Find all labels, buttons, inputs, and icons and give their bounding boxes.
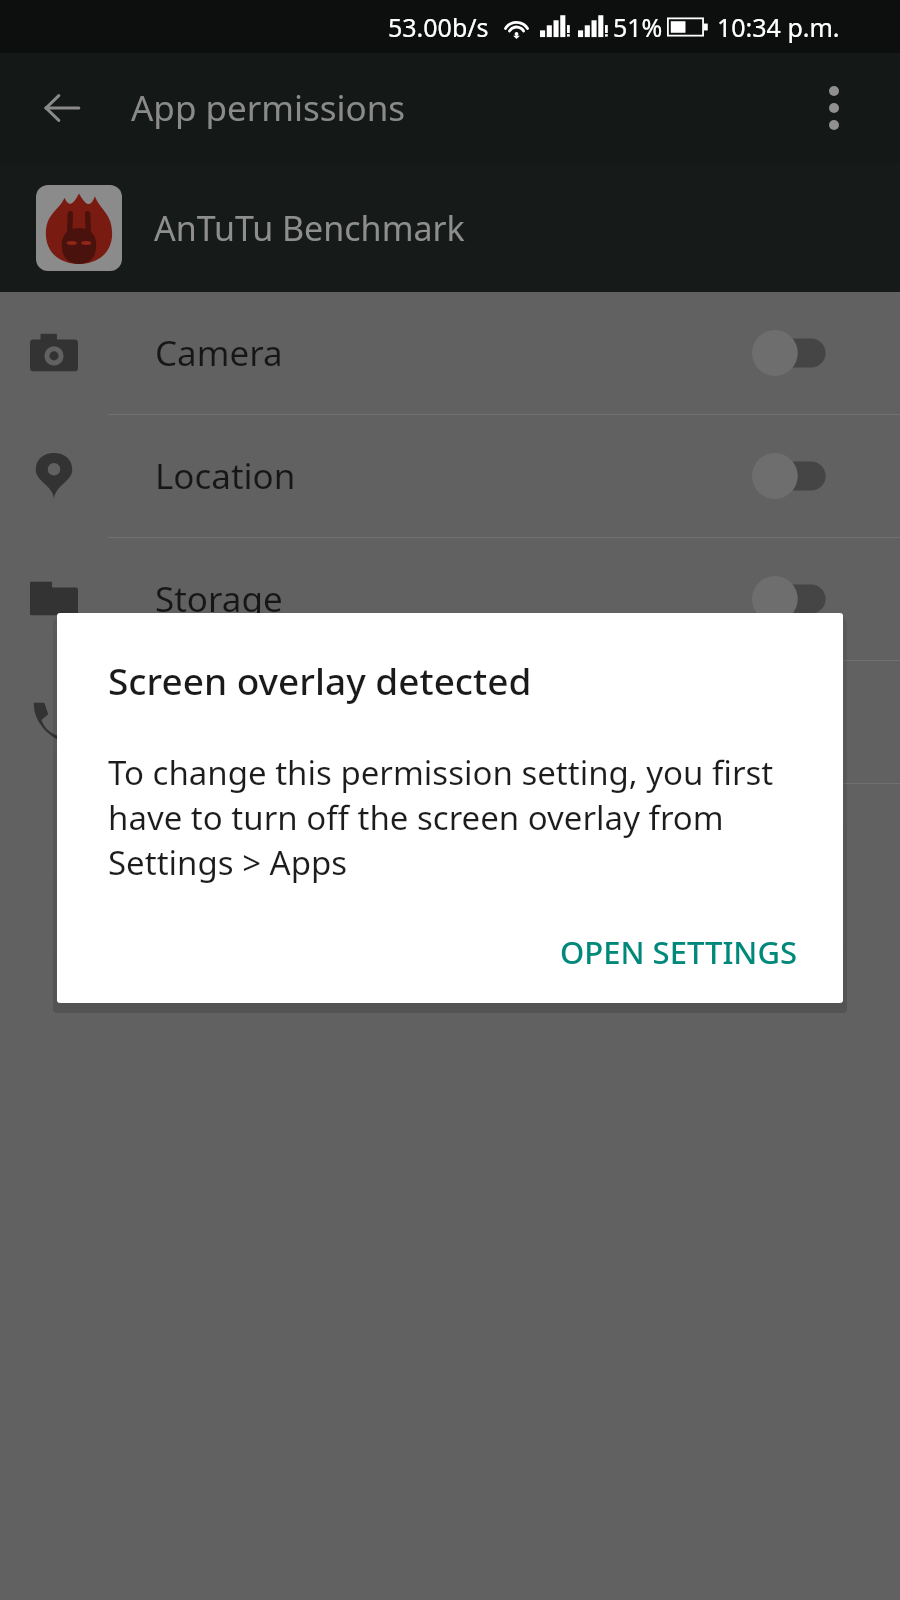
staticText: AnTuTu Benchmark <box>154 205 465 251</box>
button[interactable]: OPEN SETTINGS <box>538 915 819 989</box>
button[interactable] <box>752 696 844 748</box>
staticText: 53.00b/s <box>388 10 489 44</box>
button[interactable]: AnTuTu Benchmark <box>0 163 900 292</box>
button[interactable] <box>752 327 844 379</box>
button[interactable]: Camera <box>0 292 900 414</box>
button[interactable] <box>752 573 844 625</box>
staticText: 10:34 p.m. <box>717 10 840 44</box>
staticText: Screen overlay detected <box>108 655 532 705</box>
button[interactable]: Location <box>0 415 900 537</box>
button[interactable]: Phone <box>0 661 900 783</box>
staticText: To change this permission setting, you f… <box>108 750 805 885</box>
staticText: OPEN SETTINGS <box>560 931 797 973</box>
staticText: Camera <box>155 329 283 377</box>
staticText: 51% <box>613 10 663 44</box>
staticText: Location <box>155 452 296 500</box>
button[interactable] <box>752 450 844 502</box>
staticText: Storage <box>155 575 283 623</box>
staticText: App permissions <box>131 84 406 132</box>
button[interactable]: More options <box>801 75 867 141</box>
button[interactable]: Back <box>28 74 96 142</box>
button[interactable]: Storage <box>0 538 900 660</box>
